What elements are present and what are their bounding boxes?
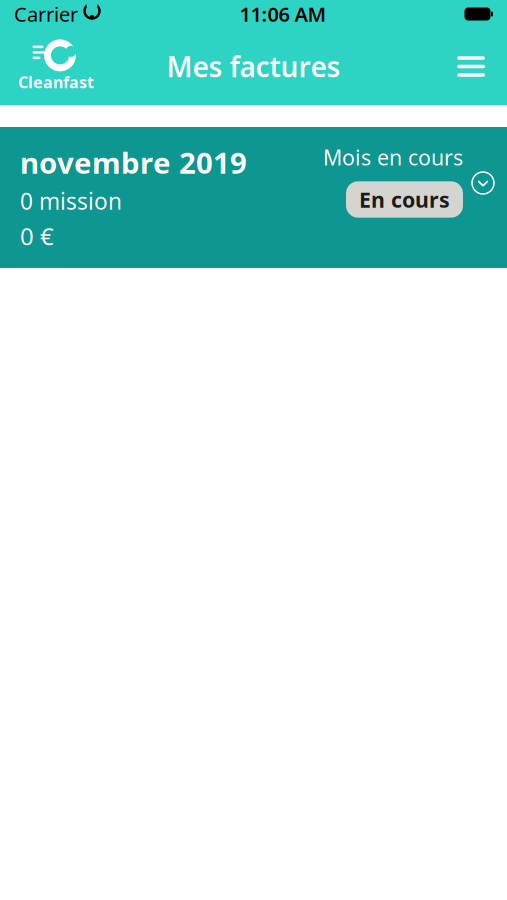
staticText: Mois en cours xyxy=(323,143,463,171)
staticText: 11:06 AM xyxy=(239,1,326,27)
button[interactable]: Cleanfast home xyxy=(8,36,104,97)
staticText: Cleanfast xyxy=(18,71,94,93)
button[interactable]: Menu xyxy=(443,44,499,89)
button[interactable]: novembre 2019 xyxy=(0,127,507,268)
staticText: Carrier xyxy=(14,1,78,27)
staticText: 0 mission xyxy=(20,186,122,216)
staticText: En cours xyxy=(359,185,450,214)
staticText: 0 € xyxy=(20,220,54,252)
staticText: Mes factures xyxy=(166,48,340,85)
staticText: novembre 2019 xyxy=(20,143,247,182)
